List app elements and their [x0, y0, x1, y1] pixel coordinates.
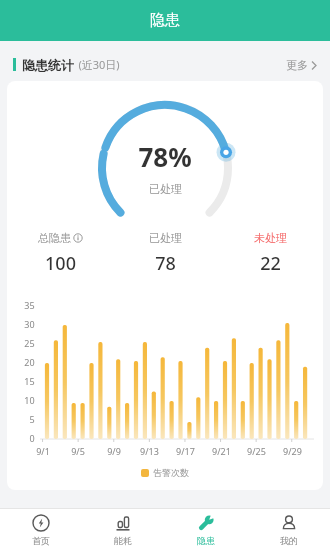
- staticText: 9/17: [176, 445, 195, 457]
- staticText: 已处理: [149, 231, 182, 245]
- staticText: 我的: [280, 535, 298, 546]
- staticText: 已处理: [149, 182, 182, 196]
- staticText: 9/21: [212, 445, 231, 457]
- staticText: 9/25: [247, 445, 266, 457]
- staticText: 未处理: [254, 231, 287, 245]
- staticText: 20: [24, 356, 35, 368]
- button[interactable]: 已处理: [113, 231, 218, 273]
- staticText: 100: [45, 251, 76, 273]
- staticText: 隐患: [150, 11, 180, 30]
- button[interactable]: 首页: [0, 509, 82, 550]
- staticText: 9/5: [71, 445, 85, 457]
- button[interactable]: 我的: [247, 509, 330, 550]
- staticText: 告警次数: [153, 467, 189, 478]
- staticText: 9/9: [107, 445, 121, 457]
- staticText: 5: [29, 413, 35, 425]
- button[interactable]: 未处理: [218, 231, 323, 273]
- staticText: 首页: [32, 535, 50, 546]
- staticText: 总隐患: [38, 231, 71, 245]
- staticText: 25: [24, 337, 35, 349]
- staticText: 9/29: [283, 445, 302, 457]
- staticText: 能耗: [114, 535, 132, 546]
- staticText: 10: [24, 394, 35, 406]
- staticText: 隐患: [197, 535, 215, 546]
- staticText: 15: [24, 375, 35, 387]
- staticText: 78: [155, 251, 176, 273]
- staticText: 78%: [138, 139, 192, 174]
- button[interactable]: 隐患: [164, 509, 247, 550]
- staticText: 30: [24, 318, 35, 330]
- staticText: 0: [29, 432, 35, 444]
- staticText: 9/1: [36, 445, 50, 457]
- button[interactable]: 更多: [286, 58, 317, 72]
- staticText: (近30日): [78, 57, 120, 72]
- staticText: 35: [24, 299, 35, 311]
- staticText: 更多: [286, 58, 308, 72]
- button[interactable]: 能耗: [82, 509, 164, 550]
- staticText: 隐患统计: [22, 57, 74, 73]
- button[interactable]: 总隐患: [7, 231, 113, 273]
- staticText: 22: [260, 251, 281, 273]
- staticText: 9/13: [140, 445, 159, 457]
